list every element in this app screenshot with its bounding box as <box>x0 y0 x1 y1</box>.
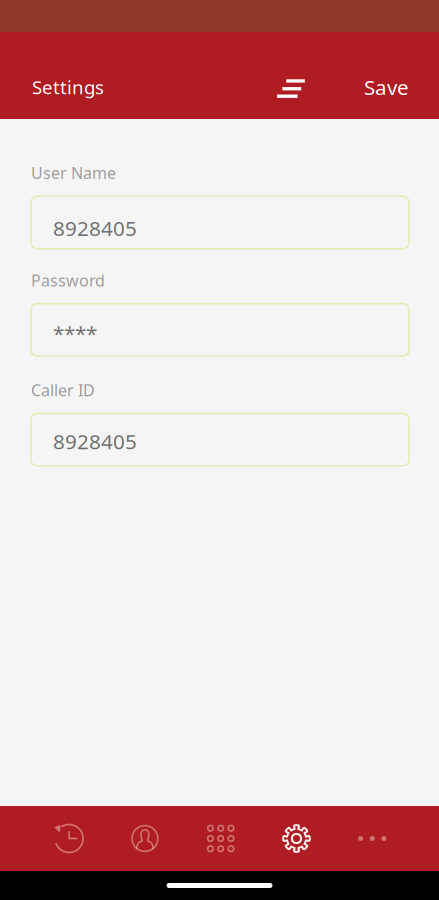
button[interactable]: Keypad <box>183 806 259 871</box>
button[interactable]: Sort <box>269 70 313 104</box>
staticText: **** <box>53 319 97 347</box>
button[interactable]: Settings <box>32 70 104 104</box>
button[interactable]: Contacts <box>107 806 183 871</box>
staticText: 8928405 <box>53 427 137 455</box>
button[interactable]: Settings <box>259 806 334 871</box>
button[interactable]: Save <box>364 70 409 104</box>
button[interactable]: Recents <box>31 806 107 871</box>
staticText: Save <box>364 73 409 101</box>
staticText: 8928405 <box>53 214 137 242</box>
staticText: Password <box>31 269 105 291</box>
staticText: Settings <box>32 74 104 100</box>
staticText: Caller ID <box>31 379 95 401</box>
button[interactable]: More <box>334 806 410 871</box>
staticText: User Name <box>31 162 116 184</box>
